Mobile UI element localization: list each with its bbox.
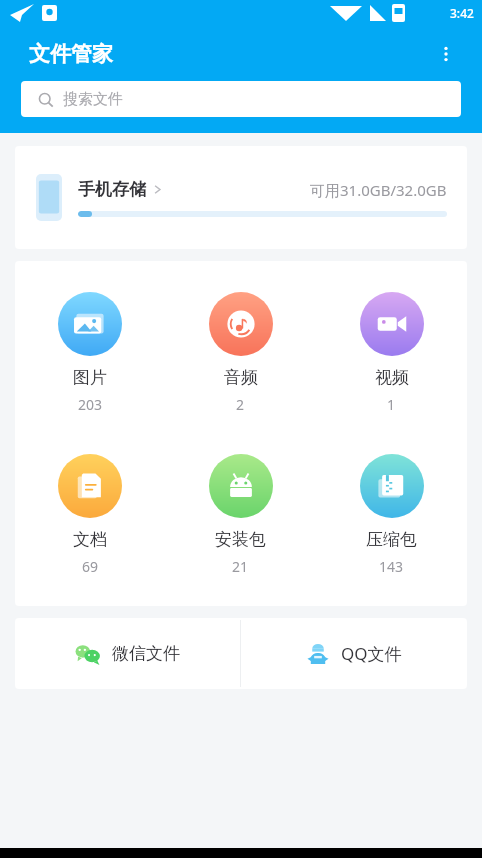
button[interactable]: 压缩包 <box>316 452 467 578</box>
staticText: QQ文件 <box>341 642 402 665</box>
staticText: 搜索文件 <box>63 90 123 109</box>
staticText: 手机存储 <box>78 179 146 200</box>
button[interactable]: 微信文件 <box>15 618 240 689</box>
button[interactable]: More options <box>432 40 460 68</box>
staticText: 微信文件 <box>112 643 180 664</box>
staticText: 压缩包 <box>366 529 417 550</box>
button[interactable]: 视频 <box>316 290 467 416</box>
staticText: 203 <box>78 395 103 414</box>
staticText: 1 <box>387 395 396 414</box>
staticText: 文件管家 <box>29 41 113 67</box>
staticText: 视频 <box>375 367 409 388</box>
staticText: 69 <box>82 557 99 576</box>
staticText: 143 <box>379 557 404 576</box>
button[interactable]: 手机存储 <box>15 146 467 249</box>
button[interactable]: 图片 <box>15 290 165 416</box>
staticText: 音频 <box>224 367 258 388</box>
staticText: 21 <box>232 557 249 576</box>
staticText: 安装包 <box>215 529 266 550</box>
button[interactable]: 文档 <box>15 452 165 578</box>
button[interactable]: QQ文件 <box>241 618 467 689</box>
staticText: 可用31.0GB/32.0GB <box>310 180 447 200</box>
staticText: 文档 <box>73 529 107 550</box>
button[interactable]: 安装包 <box>165 452 316 578</box>
button[interactable]: 音频 <box>165 290 316 416</box>
staticText: 3:42 <box>450 5 474 21</box>
staticText: 图片 <box>73 367 107 388</box>
button[interactable]: 搜索文件 <box>21 81 461 117</box>
staticText: 2 <box>236 395 245 414</box>
